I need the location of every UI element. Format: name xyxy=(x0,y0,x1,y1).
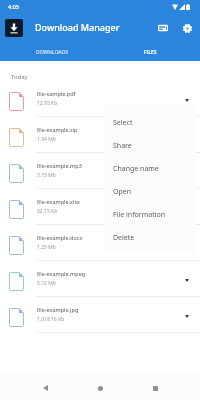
staticText: File information xyxy=(113,210,166,220)
button[interactable]: DOWNLOADS xyxy=(0,42,100,61)
staticText: 1,018.16 Kb xyxy=(37,316,65,323)
button[interactable]: Select xyxy=(104,111,196,134)
button[interactable]: file-example.docx xyxy=(0,227,200,263)
staticText: file-example.docx xyxy=(37,234,83,241)
button[interactable]: Open xyxy=(104,180,196,203)
staticText: 1.25 Mb xyxy=(37,244,56,251)
button[interactable]: FILES xyxy=(100,42,200,61)
button[interactable]: Advertisement xyxy=(155,20,171,36)
button[interactable]: Back xyxy=(35,378,55,398)
button[interactable]: Share xyxy=(104,134,196,157)
staticText: 82.15 Kb xyxy=(37,208,58,215)
button[interactable]: Download Manager icon xyxy=(5,19,23,37)
staticText: 5.72 Mb xyxy=(37,280,56,287)
staticText: file-example.zip xyxy=(37,126,78,133)
button[interactable]: Change name xyxy=(104,157,196,180)
button[interactable]: More options xyxy=(179,272,195,288)
button[interactable]: Delete xyxy=(104,226,196,249)
staticText: file-example.jpg xyxy=(37,306,79,313)
staticText: Today xyxy=(11,73,28,81)
button[interactable]: file-example.mp3 xyxy=(0,155,200,191)
button[interactable]: file-sample.pdf xyxy=(0,83,200,119)
staticText: 12.95 Kb xyxy=(37,100,58,107)
staticText: DOWNLOADS xyxy=(36,49,69,56)
button[interactable]: Settings xyxy=(179,20,195,36)
button[interactable]: file-example.jpg xyxy=(0,299,200,335)
staticText: Select xyxy=(113,118,133,128)
staticText: FILES xyxy=(144,49,157,56)
staticText: Delete xyxy=(113,233,135,243)
staticText: 3.73 Mb xyxy=(37,172,56,179)
staticText: 1.94 Mb xyxy=(37,136,56,143)
staticText: Change name xyxy=(113,164,159,174)
button[interactable]: file-example.mpeg xyxy=(0,263,200,299)
button[interactable]: file-example.zip xyxy=(0,119,200,155)
staticText: Share xyxy=(113,141,132,151)
staticText: file-example.mp3 xyxy=(37,162,82,169)
staticText: file-example.mpeg xyxy=(37,270,86,277)
button[interactable]: More options xyxy=(179,308,195,324)
staticText: file-sample.pdf xyxy=(37,90,76,97)
button[interactable]: File information xyxy=(104,203,196,226)
button[interactable]: More options xyxy=(179,92,195,108)
staticText: file-example.xlsx xyxy=(37,198,80,205)
staticText: Open xyxy=(113,187,132,197)
button[interactable]: Recent apps xyxy=(145,378,165,398)
staticText: 4:05 xyxy=(8,3,19,10)
button[interactable]: file-example.xlsx xyxy=(0,191,200,227)
button[interactable]: Home xyxy=(90,378,110,398)
staticText: Download Manager xyxy=(35,21,120,33)
